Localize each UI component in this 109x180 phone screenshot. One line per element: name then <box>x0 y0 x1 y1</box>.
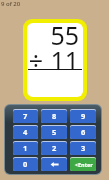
button[interactable]: 9 <box>70 109 96 123</box>
button[interactable]: 4 <box>13 125 38 139</box>
staticText: Enter <box>78 161 93 168</box>
staticText: 5 <box>52 127 57 137</box>
staticText: 6 <box>81 127 86 137</box>
staticText: 9 of 20 <box>1 0 21 8</box>
button[interactable]: 5 <box>41 125 67 139</box>
staticText: 1 <box>23 143 28 153</box>
staticText: 4 <box>23 127 28 137</box>
button[interactable]: 7 <box>13 109 38 123</box>
staticText: ÷ <box>28 43 43 77</box>
staticText: 2 <box>52 143 57 153</box>
button[interactable]: 8 <box>41 109 67 123</box>
staticText: 3 <box>81 143 86 153</box>
button[interactable]: 6 <box>70 125 96 139</box>
button[interactable]: Backspace <box>41 157 67 171</box>
button[interactable]: 3 <box>70 141 96 155</box>
staticText: 7 <box>23 111 28 121</box>
button[interactable]: 2 <box>41 141 67 155</box>
staticText: 55 <box>27 23 79 52</box>
staticText: 11 <box>27 43 79 77</box>
staticText: 0 <box>23 159 28 169</box>
staticText: 9 <box>81 111 86 121</box>
button[interactable]: Enter <box>70 157 96 171</box>
button[interactable]: 0 <box>13 157 38 171</box>
button[interactable]: 1 <box>13 141 38 155</box>
button[interactable]: 55 <box>27 23 83 97</box>
staticText: 8 <box>52 111 57 121</box>
